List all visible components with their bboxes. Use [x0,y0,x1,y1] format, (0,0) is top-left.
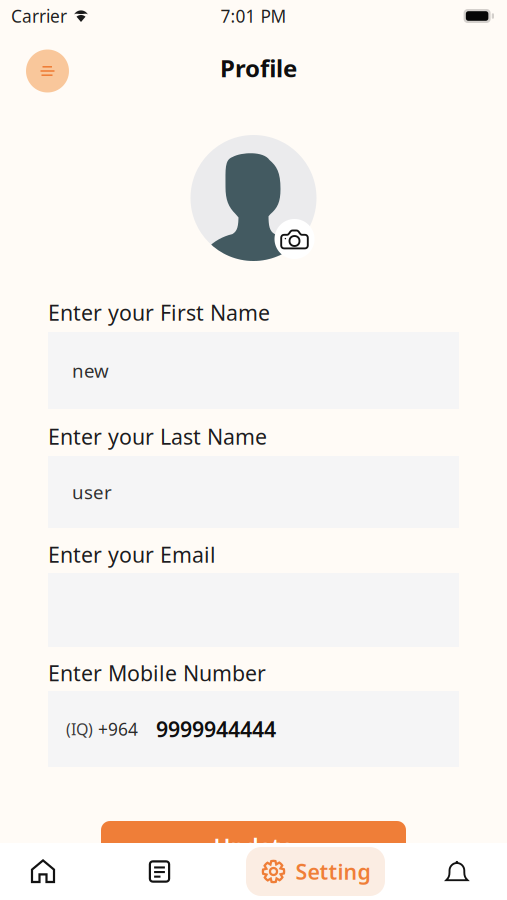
staticText: 7:01 PM [220,4,286,27]
staticText: 9999944444 [138,715,276,743]
staticText: user [72,480,112,504]
button[interactable]: Change photo [274,219,314,259]
staticText: new [72,358,109,383]
staticText: Enter your Email [48,540,216,569]
button[interactable]: Orders [86,843,233,900]
staticText: Carrier [11,4,67,27]
staticText: Update [213,832,293,862]
button[interactable]: Update [101,821,406,873]
staticText: Setting [295,857,370,886]
staticText: Enter Mobile Number [48,659,266,687]
staticText: Profile [220,52,297,84]
button[interactable]: Setting [233,843,385,900]
staticText: Enter your First Name [48,298,270,327]
button[interactable]: Menu [26,49,69,92]
staticText: Enter your Last Name [48,422,267,451]
button[interactable]: Home [0,843,86,900]
staticText: (IQ) [66,718,93,740]
button[interactable]: Notifications [385,843,507,900]
staticText: +964 [93,717,138,740]
